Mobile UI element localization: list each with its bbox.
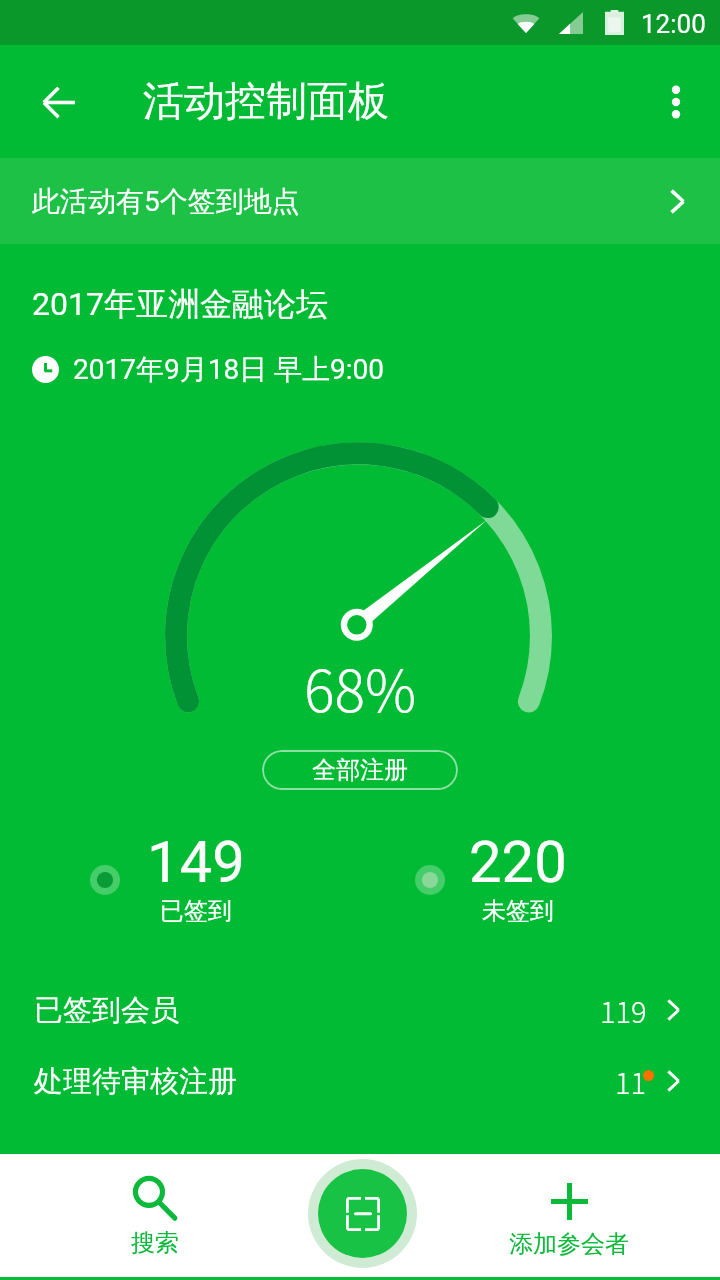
button[interactable]: 全部注册	[262, 750, 458, 790]
button[interactable]: 已签到会员	[0, 975, 720, 1045]
staticText: 已签到会员	[34, 992, 179, 1029]
button[interactable]: Scan QR code	[318, 1169, 407, 1258]
staticText: 已签到	[160, 896, 232, 926]
staticText: 搜索	[131, 1228, 179, 1258]
button[interactable]: Back	[28, 72, 88, 132]
button[interactable]: 此活动有5个签到地点	[0, 158, 720, 244]
staticText: 68%	[304, 646, 417, 729]
staticText: 全部注册	[312, 755, 408, 785]
staticText: 添加参会者	[509, 1229, 629, 1259]
staticText: 活动控制面板	[143, 76, 389, 128]
button[interactable]: 搜索	[35, 1154, 275, 1277]
staticText: 2017年9月18日 早上9:00	[73, 352, 385, 387]
button[interactable]: More options	[648, 74, 704, 130]
staticText: 未签到	[482, 896, 554, 926]
staticText: 119	[600, 989, 647, 1031]
staticText: 2017年亚洲金融论坛	[32, 284, 328, 324]
button[interactable]: 处理待审核注册	[0, 1046, 720, 1116]
staticText: 220	[469, 828, 567, 896]
staticText: 此活动有5个签到地点	[32, 184, 300, 219]
staticText: 12:00	[641, 9, 706, 39]
staticText: 处理待审核注册	[34, 1063, 237, 1100]
staticText: 11	[615, 1060, 647, 1102]
staticText: 149	[147, 828, 245, 896]
button[interactable]: 添加参会者	[449, 1154, 689, 1277]
